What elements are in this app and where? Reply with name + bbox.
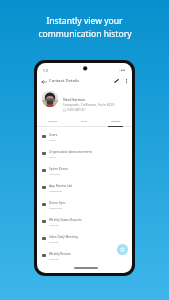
staticText: App Review Lab [49, 184, 73, 188]
button[interactable]: PROFILE [37, 115, 68, 127]
staticText: Sunnyvale, California, Suite #220 [63, 102, 115, 107]
staticText: Sales Daily Meeting [49, 235, 78, 239]
staticText: Instantly view your [46, 15, 123, 27]
staticText: Monday [49, 257, 59, 260]
button[interactable]: Demo Sync [37, 196, 132, 213]
staticText: 9:30 (GMT-8) [67, 108, 85, 112]
staticText: 9:30 [43, 69, 49, 73]
staticText: Weekly Review [49, 252, 71, 256]
staticText: Demo Sync [49, 201, 66, 205]
button[interactable]: Weekly Review [37, 247, 132, 264]
button[interactable]: TEAM [68, 115, 100, 127]
staticText: HISTORY [111, 120, 121, 123]
staticText: Wednesday [49, 189, 63, 192]
button[interactable]: Sprint Demo [37, 162, 132, 179]
button[interactable]: Compose [117, 244, 128, 255]
staticText: Neal Harmon [63, 97, 86, 102]
button[interactable]: Weekly Status Reports [37, 213, 132, 230]
staticText: Wednesday [49, 206, 63, 209]
staticText: PROFILE [48, 120, 58, 123]
staticText: Today [49, 155, 56, 158]
button[interactable]: Organisation Announcement [37, 145, 132, 162]
button[interactable]: Sales Daily Meeting [37, 230, 132, 247]
button[interactable]: Users [37, 128, 132, 145]
staticText: Organisation Announcement [49, 150, 92, 154]
button[interactable]: More options [122, 77, 130, 85]
staticText: Sprint Demo [49, 167, 68, 171]
button[interactable]: Edit [112, 77, 120, 85]
staticText: Monday [49, 240, 59, 243]
staticText: Contact Details [49, 78, 80, 84]
staticText: Weekly Status Reports [49, 218, 82, 222]
staticText: Users [49, 133, 58, 137]
staticText: Today [49, 138, 56, 141]
staticText: TEAM [81, 120, 88, 123]
button[interactable]: Back [40, 78, 47, 85]
button[interactable]: HISTORY [100, 115, 132, 127]
staticText: Yesterday [49, 172, 61, 175]
staticText: communication history [38, 28, 132, 40]
staticText: Tuesday [49, 223, 59, 226]
button[interactable]: App Review Lab [37, 179, 132, 196]
